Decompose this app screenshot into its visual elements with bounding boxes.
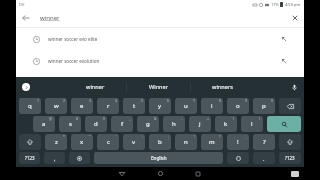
button[interactable]: a: [33, 116, 55, 132]
button[interactable]: ?123: [279, 152, 301, 164]
staticText: .: [263, 155, 265, 162]
staticText: w: [54, 102, 59, 110]
staticText: @: [49, 116, 53, 121]
staticText: j: [199, 120, 201, 128]
button[interactable]: Navigate up: [16, 8, 35, 27]
button[interactable]: k: [215, 116, 237, 132]
staticText: 9: [245, 98, 247, 103]
staticText: u: [184, 102, 188, 110]
staticText: &: [154, 116, 157, 121]
button[interactable]: Shift: [279, 134, 301, 150]
staticText: winners: [212, 83, 233, 91]
staticText: 2: [63, 98, 65, 103]
button[interactable]: Home: [141, 167, 179, 180]
button[interactable]: z: [45, 134, 67, 150]
button[interactable]: Insert suggestion: [276, 53, 292, 69]
staticText: 7: [193, 98, 195, 103]
button[interactable]: Switch keyboard: [290, 170, 300, 178]
staticText: -: [181, 116, 183, 121]
staticText: 1: [37, 98, 39, 103]
button[interactable]: Shift: [19, 134, 41, 150]
button[interactable]: d: [85, 116, 107, 132]
staticText: n: [184, 138, 188, 146]
button[interactable]: Search: [267, 116, 301, 132]
button[interactable]: !: [227, 134, 249, 150]
staticText: b: [158, 138, 162, 146]
staticText: s: [69, 120, 72, 128]
button[interactable]: m: [201, 134, 223, 150]
staticText: 4:50 pm: [285, 2, 301, 7]
button[interactable]: winner soccer evo elite: [16, 28, 304, 50]
button[interactable]: n: [175, 134, 197, 150]
staticText: ?123: [285, 155, 295, 161]
button[interactable]: Voice input: [289, 82, 299, 92]
button[interactable]: p: [253, 98, 275, 114]
button[interactable]: winners: [191, 77, 254, 97]
button[interactable]: x: [71, 134, 93, 150]
button[interactable]: j: [189, 116, 211, 132]
staticText: !: [237, 138, 239, 146]
button[interactable]: u: [175, 98, 197, 114]
staticText: v: [132, 138, 136, 146]
staticText: y: [158, 102, 162, 110]
staticText: z: [55, 138, 58, 146]
button[interactable]: e: [71, 98, 93, 114]
button[interactable]: winner: [64, 77, 126, 97]
button[interactable]: s: [59, 116, 81, 132]
staticText: d: [94, 120, 98, 128]
staticText: f: [121, 120, 124, 128]
staticText: 3: [89, 98, 91, 103]
button[interactable]: Clear query: [285, 8, 304, 27]
button[interactable]: ?: [253, 134, 275, 150]
button[interactable]: t: [123, 98, 145, 114]
button[interactable]: English: [94, 152, 223, 164]
button[interactable]: Keyboard settings: [69, 152, 90, 164]
staticText: ): [259, 116, 261, 121]
button[interactable]: winner soccer evolution: [16, 50, 304, 72]
button[interactable]: g: [137, 116, 159, 132]
staticText: g: [146, 120, 150, 128]
staticText: 4: [115, 98, 117, 103]
button[interactable]: r: [97, 98, 119, 114]
staticText: a: [42, 120, 46, 128]
staticText: !: [194, 134, 195, 139]
staticText: k: [224, 120, 228, 128]
button[interactable]: ,: [44, 152, 65, 164]
button[interactable]: w: [45, 98, 67, 114]
button[interactable]: Backspace: [279, 98, 301, 114]
button[interactable]: o: [227, 98, 249, 114]
button[interactable]: Insert suggestion: [276, 31, 292, 47]
button[interactable]: Hide keyboard: [103, 167, 141, 180]
staticText: English: [151, 155, 167, 161]
staticText: *: [63, 134, 65, 139]
staticText: 5: [141, 98, 143, 103]
staticText: 17%: [271, 2, 279, 7]
button[interactable]: f: [111, 116, 133, 132]
button[interactable]: l: [241, 116, 263, 132]
staticText: 6: [167, 98, 169, 103]
staticText: (: [233, 116, 235, 121]
staticText: ,: [246, 134, 247, 139]
button[interactable]: q: [19, 98, 41, 114]
button[interactable]: b: [149, 134, 171, 150]
staticText: ;: [168, 134, 169, 139]
button[interactable]: Winner: [127, 77, 190, 97]
staticText: 0: [271, 98, 273, 103]
button[interactable]: Emoji: [227, 152, 249, 164]
staticText: ': [116, 134, 117, 139]
staticText: i: [211, 102, 213, 110]
button[interactable]: c: [97, 134, 119, 150]
button[interactable]: h: [163, 116, 185, 132]
button[interactable]: y: [149, 98, 171, 114]
button[interactable]: i: [201, 98, 223, 114]
button[interactable]: Expand toolbar: [22, 83, 30, 91]
staticText: +: [207, 116, 209, 121]
button[interactable]: ?123: [19, 152, 40, 164]
button[interactable]: v: [123, 134, 145, 150]
button[interactable]: .: [253, 152, 275, 164]
staticText: l: [251, 120, 253, 128]
staticText: ?: [219, 134, 221, 139]
staticText: #: [76, 116, 79, 121]
staticText: winner: [86, 83, 105, 91]
button[interactable]: Recent apps: [179, 167, 217, 180]
